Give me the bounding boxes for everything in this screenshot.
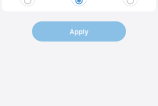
button[interactable]: First option xyxy=(19,0,37,10)
button[interactable]: Apply xyxy=(32,21,126,41)
button[interactable]: Second option, selected xyxy=(70,0,88,10)
button[interactable]: Third option xyxy=(121,0,139,10)
staticText: Apply xyxy=(69,28,88,36)
